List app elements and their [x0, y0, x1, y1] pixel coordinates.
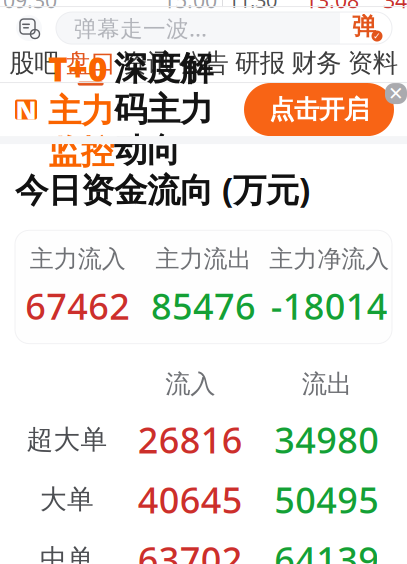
- button[interactable]: 财务: [288, 45, 344, 86]
- staticText: 财务: [291, 47, 341, 79]
- staticText: 弹: [352, 12, 376, 41]
- staticText: 40645: [138, 475, 243, 523]
- staticText: 资讯: [122, 47, 172, 79]
- staticText: 50495: [274, 475, 379, 523]
- button[interactable]: 发送弹幕: [56, 12, 392, 44]
- button[interactable]: 研报: [232, 45, 288, 86]
- staticText: 7.39%: [206, 0, 276, 6]
- staticText: -18014: [271, 282, 388, 330]
- staticText: 63702: [138, 535, 243, 564]
- staticText: 弹幕走一波...: [74, 13, 207, 43]
- staticText: ✕: [388, 83, 404, 104]
- staticText: ✓: [373, 31, 381, 41]
- staticText: 11:30: [228, 0, 277, 13]
- button[interactable]: 股吧: [6, 45, 62, 86]
- staticText: 流出: [302, 369, 352, 400]
- button[interactable]: 盘口: [62, 45, 119, 86]
- staticText: 15:00: [163, 0, 217, 14]
- staticText: 中单: [40, 543, 94, 564]
- button[interactable]: T加零主力监控，点击开启: [0, 83, 407, 136]
- button[interactable]: 关闭广告: [385, 83, 407, 104]
- button[interactable]: 资讯: [15, 14, 43, 42]
- staticText: 公告: [178, 47, 228, 79]
- staticText: 资料: [348, 47, 398, 79]
- staticText: 主力流出: [155, 244, 251, 274]
- staticText: 流入: [165, 369, 215, 400]
- staticText: 64139: [274, 535, 379, 564]
- staticText: 主力净流入: [269, 244, 389, 274]
- button[interactable]: 公告: [175, 45, 232, 86]
- staticText: N: [15, 93, 36, 126]
- staticText: 13.08: [305, 0, 359, 14]
- staticText: 09:30: [3, 0, 57, 14]
- staticText: 主力流入: [30, 244, 126, 274]
- button[interactable]: 资讯: [119, 45, 175, 86]
- staticText: 26816: [138, 416, 243, 463]
- staticText: 34: [383, 0, 407, 14]
- staticText: ‹: [15, 0, 31, 10]
- staticText: 股吧: [9, 47, 59, 79]
- staticText: 34980: [274, 416, 379, 463]
- button[interactable]: 资料: [345, 45, 401, 86]
- staticText: 13.08: [130, 0, 193, 6]
- staticText: 超大单: [26, 423, 107, 456]
- staticText: 研报: [235, 47, 285, 79]
- staticText: 大单: [40, 483, 94, 516]
- staticText: 点击开启: [269, 94, 369, 125]
- staticText: 67462: [25, 282, 130, 330]
- staticText: 盘口: [66, 47, 116, 79]
- staticText: 今日资金流向 (万元): [15, 167, 310, 211]
- staticText: 深度解码主力动向: [114, 48, 213, 171]
- staticText: T+0主力监控: [48, 46, 114, 173]
- staticText: 85476: [151, 282, 256, 330]
